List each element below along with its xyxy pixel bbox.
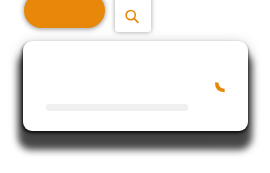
other: Call xyxy=(216,79,228,91)
button[interactable]: Call xyxy=(23,41,248,131)
button[interactable]: Primary action xyxy=(24,0,105,28)
button[interactable]: Search xyxy=(115,0,151,32)
